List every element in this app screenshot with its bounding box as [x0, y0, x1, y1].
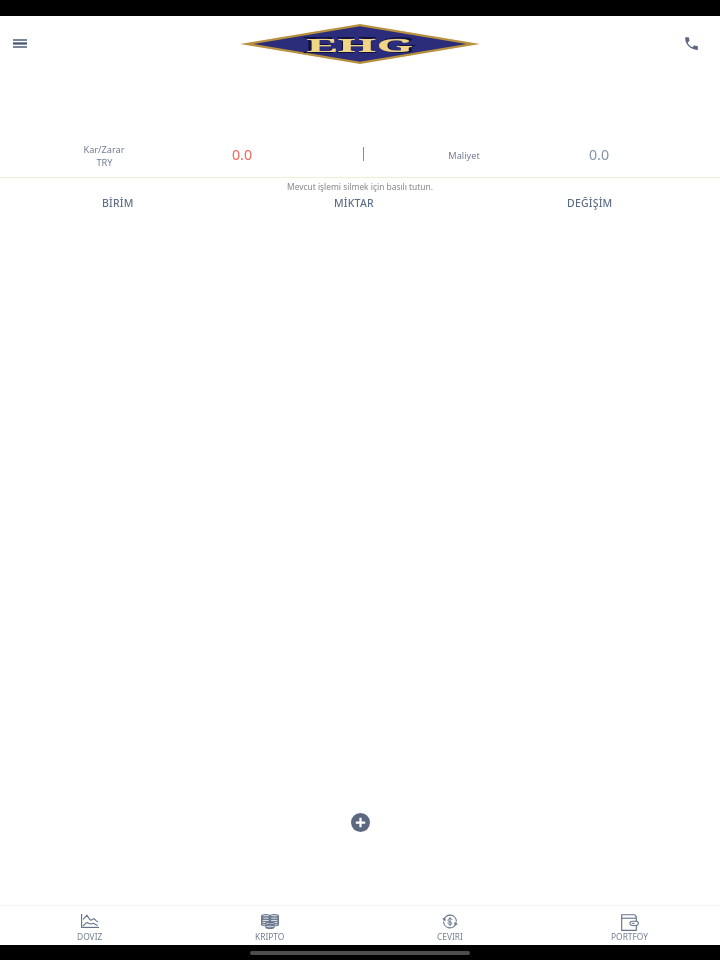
button[interactable]: CEVIRI — [360, 906, 540, 945]
button[interactable]: Add — [351, 813, 370, 832]
staticText: PORTFOY — [611, 931, 649, 942]
staticText: KRIPTO — [255, 931, 285, 942]
button[interactable]: KRIPTO — [180, 906, 360, 945]
staticText: Kar/Zarar — [83, 143, 125, 156]
staticText: EHG — [306, 33, 415, 58]
button[interactable]: BİRİM — [0, 193, 236, 213]
staticText: 0.0 — [182, 145, 302, 164]
staticText: CEVIRI — [437, 931, 463, 942]
button[interactable]: MİKTAR — [236, 193, 472, 213]
staticText: BİRİM — [102, 196, 134, 210]
staticText: MİKTAR — [334, 196, 374, 210]
button[interactable]: DOVIZ — [0, 906, 180, 945]
button[interactable]: Menu — [0, 23, 40, 63]
staticText: 0.0 — [539, 145, 659, 164]
staticText: EHG — [302, 31, 419, 60]
staticText: Mevcut işlemi silmek için basılı tutun. — [0, 181, 720, 192]
button[interactable]: DEĞİŞİM — [472, 193, 708, 213]
staticText: Maliyet — [404, 149, 524, 162]
staticText: TRY — [96, 156, 113, 169]
staticText: DOVIZ — [77, 931, 103, 942]
button[interactable]: PORTFOY — [540, 906, 720, 945]
button[interactable]: Call — [671, 23, 711, 63]
staticText: DEĞİŞİM — [567, 196, 613, 210]
